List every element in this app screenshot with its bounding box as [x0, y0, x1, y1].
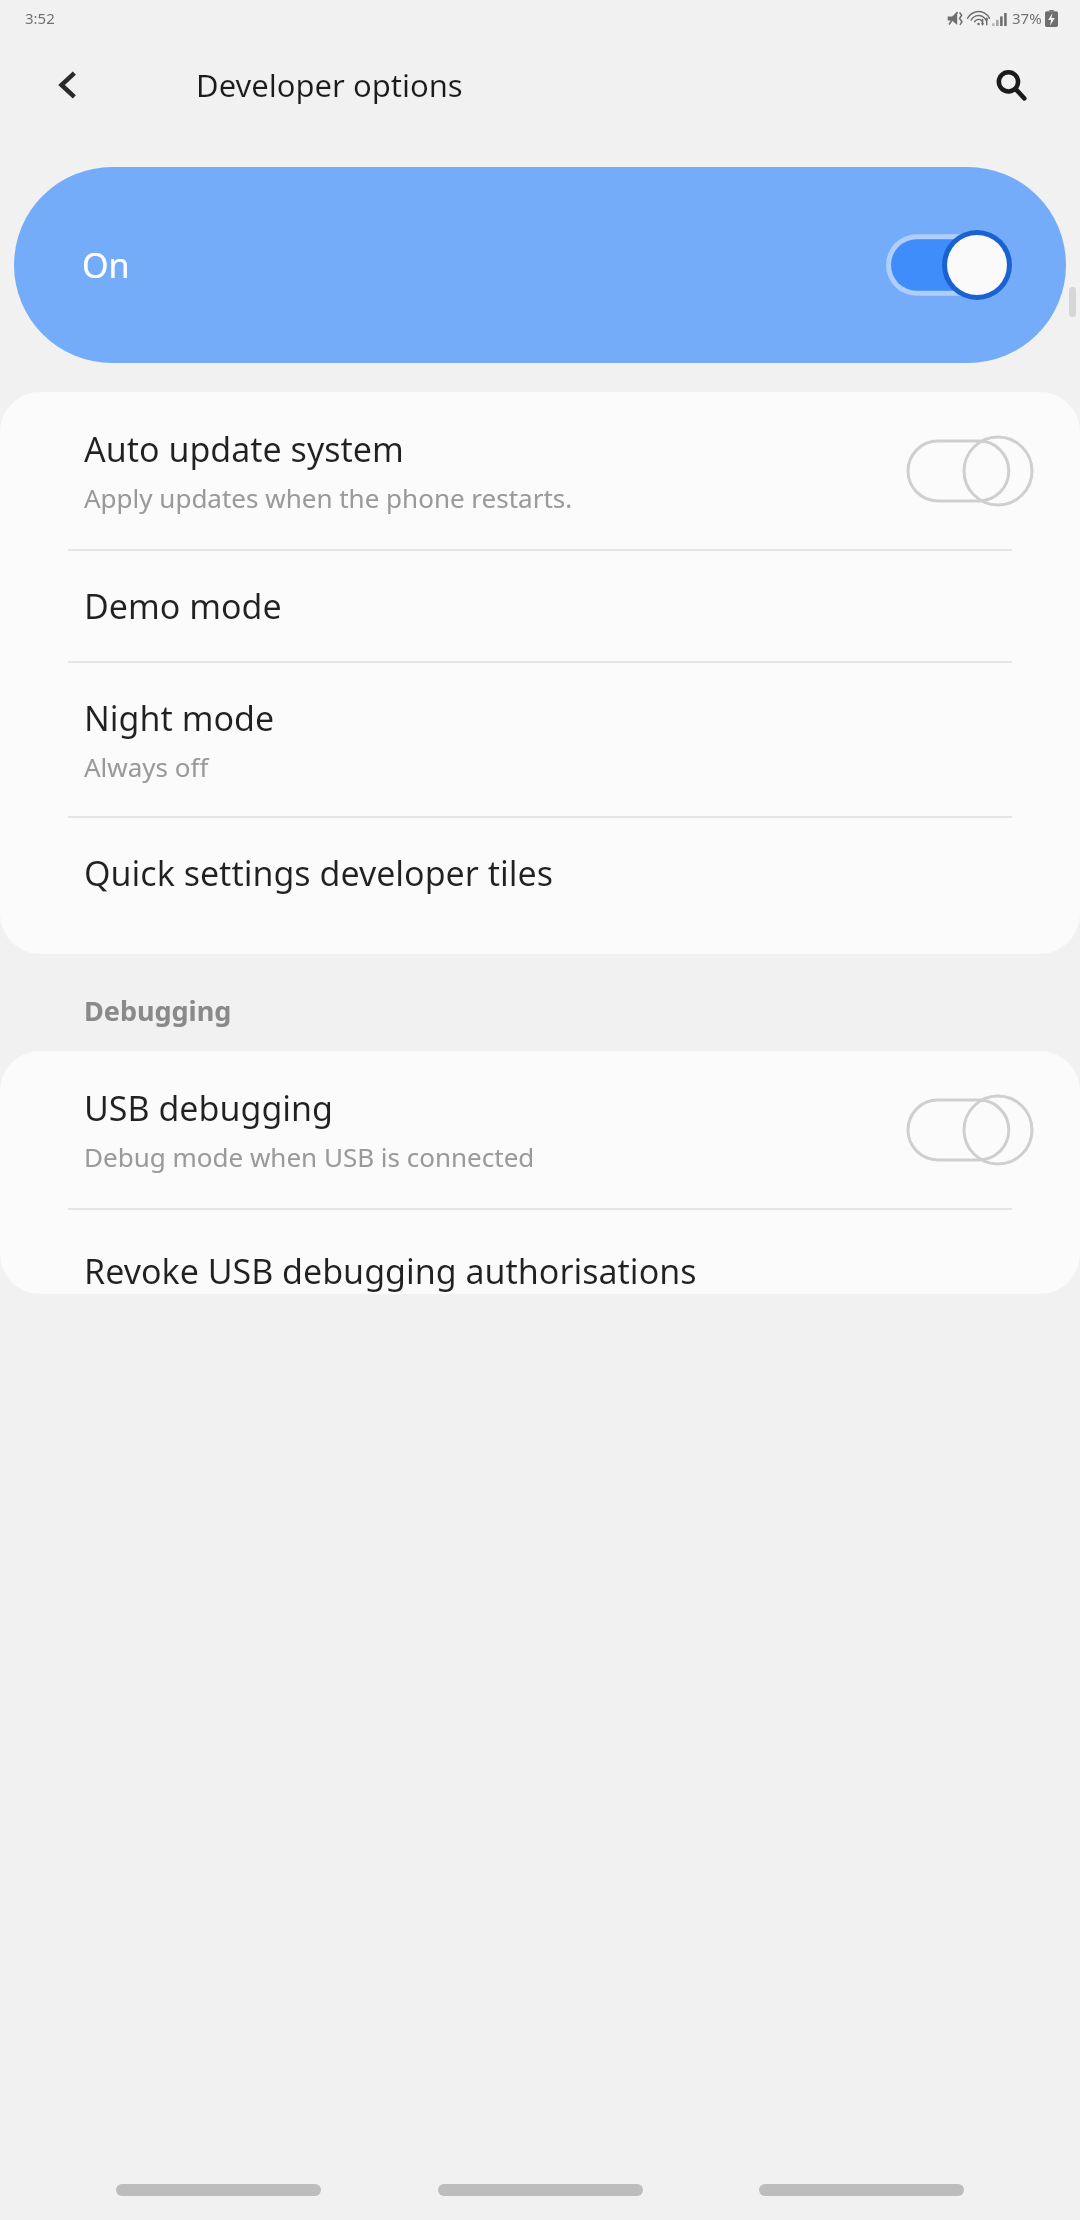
button[interactable]: Demo mode [0, 551, 1080, 661]
staticText: Debugging [84, 992, 232, 1029]
button[interactable]: Back [44, 61, 92, 109]
staticText: Developer options [196, 64, 463, 106]
button[interactable]: Quick settings developer tiles [0, 818, 1080, 928]
button[interactable]: USB debugging [0, 1051, 1080, 1208]
button[interactable]: Revoke USB debugging authorisations [0, 1210, 1080, 1294]
staticText: Quick settings developer tiles [84, 850, 553, 896]
button[interactable]: Night mode [0, 663, 1080, 816]
button[interactable]: Search [984, 58, 1038, 112]
staticText: Revoke USB debugging authorisations [84, 1248, 697, 1294]
staticText: Debug mode when USB is connected [84, 1139, 535, 1174]
button[interactable]: Auto update system [0, 392, 1080, 549]
staticText: 3:52 [25, 8, 55, 28]
button[interactable]: Navigation [759, 2184, 964, 2196]
staticText: On [82, 242, 130, 288]
staticText: Apply updates when the phone restarts. [84, 480, 573, 515]
staticText: USB debugging [84, 1085, 333, 1131]
staticText: Auto update system [84, 426, 404, 472]
staticText: 37% [1012, 8, 1042, 28]
staticText: Demo mode [84, 583, 282, 629]
staticText: Always off [84, 749, 209, 784]
staticText: Night mode [84, 695, 275, 741]
button[interactable]: On [14, 167, 1066, 363]
button[interactable]: Navigation [438, 2184, 643, 2196]
button[interactable]: Navigation [116, 2184, 321, 2196]
